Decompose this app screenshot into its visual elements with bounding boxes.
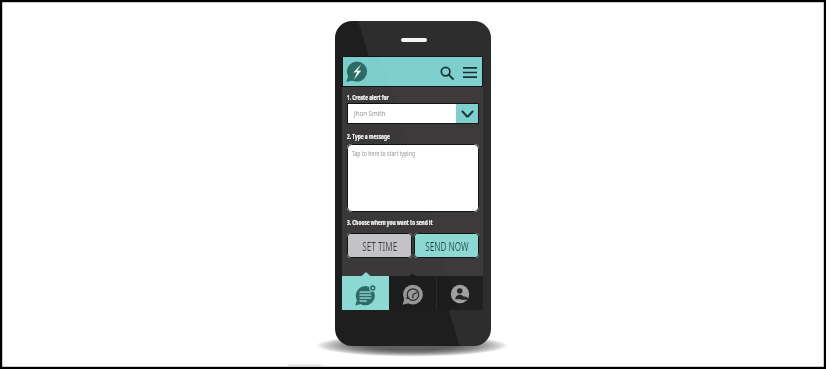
button[interactable]: Messages [342, 276, 389, 310]
staticText: SET TIME [362, 238, 398, 254]
staticText: 3. Choose whem you want to send it [347, 218, 433, 228]
staticText: Tap to here to start typing [352, 149, 416, 159]
button[interactable]: Jhon Smith [347, 103, 479, 124]
staticText: SEND NOW [425, 238, 469, 254]
staticText: 1. Create alert for [347, 93, 389, 103]
other: App logo [345, 61, 368, 84]
button[interactable]: Search [438, 64, 455, 81]
button[interactable]: Scheduled [389, 276, 436, 310]
button[interactable]: Tap to here to start typing [347, 144, 479, 212]
button[interactable]: Profile [436, 276, 483, 310]
button[interactable]: Menu [461, 64, 478, 81]
button[interactable]: SEND NOW [414, 233, 479, 258]
button[interactable]: SET TIME [347, 233, 412, 258]
staticText: 2. Type a message [347, 132, 390, 142]
staticText: Jhon Smith [354, 109, 386, 119]
